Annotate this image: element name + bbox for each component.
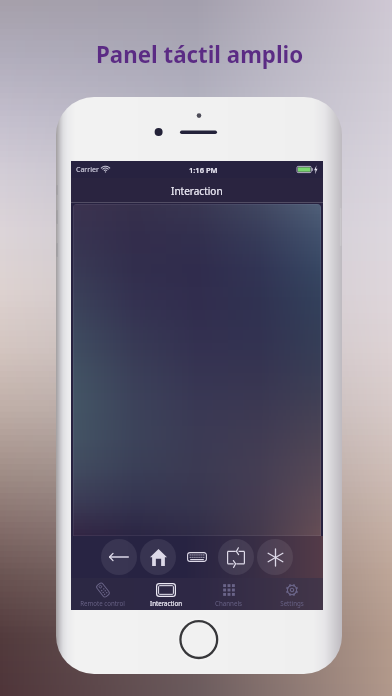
button[interactable]: Remote control — [71, 578, 134, 607]
staticText: Interaction — [150, 599, 182, 607]
button[interactable]: Rotate — [218, 539, 254, 575]
button[interactable]: Channels — [197, 578, 260, 607]
button[interactable]: Settings — [260, 578, 323, 607]
button[interactable]: Home — [140, 539, 176, 575]
staticText: 1:16 PM — [189, 165, 218, 175]
staticText: Channels — [215, 599, 242, 607]
staticText: Carrier — [76, 165, 99, 175]
button[interactable]: Touch panel — [73, 204, 321, 536]
button[interactable]: Interaction — [134, 578, 197, 607]
staticText: Settings — [280, 599, 304, 607]
button[interactable]: Back — [101, 539, 137, 575]
staticText: Remote control — [80, 599, 125, 607]
staticText: Interaction — [171, 184, 223, 198]
button[interactable]: More — [257, 539, 293, 575]
button[interactable]: Keyboard — [179, 539, 215, 575]
staticText: Panel táctil amplio — [96, 39, 304, 69]
